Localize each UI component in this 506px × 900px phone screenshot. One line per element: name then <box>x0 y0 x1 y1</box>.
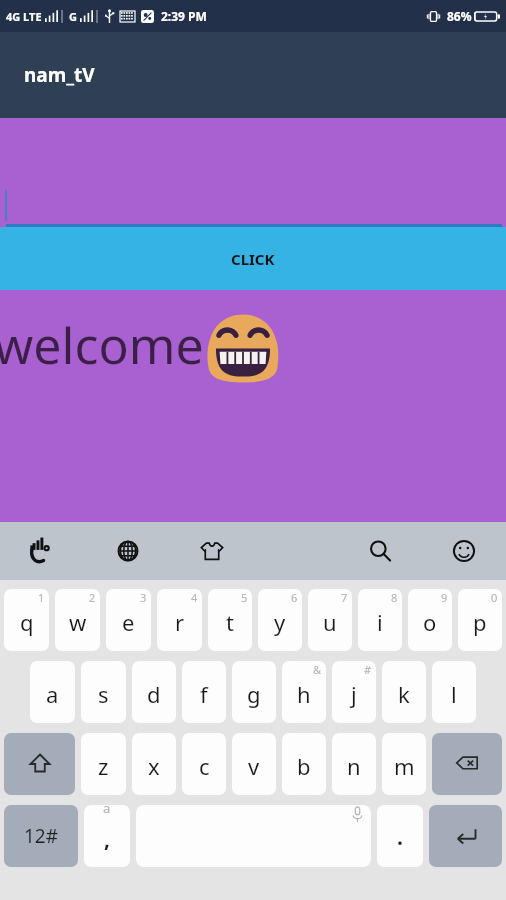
button[interactable]: m <box>382 733 426 795</box>
button[interactable]: Backspace <box>432 733 502 795</box>
staticText: x <box>148 751 160 781</box>
staticText: m <box>394 751 415 781</box>
staticText: a <box>103 805 111 817</box>
staticText: CLICK <box>231 249 275 269</box>
button[interactable]: o <box>408 589 452 651</box>
staticText: 3 <box>140 590 147 605</box>
button[interactable]: t <box>208 589 252 651</box>
staticText: & <box>313 662 322 677</box>
staticText: b <box>297 751 311 781</box>
button[interactable]: a <box>30 661 75 723</box>
button[interactable]: a <box>84 805 130 867</box>
button[interactable]: u <box>308 589 352 651</box>
staticText: 2:39 PM <box>161 8 207 24</box>
staticText: v <box>248 751 260 781</box>
button[interactable]: p <box>458 589 502 651</box>
staticText: 5 <box>241 590 248 605</box>
staticText: 2 <box>89 590 96 605</box>
staticText: welcome <box>0 311 204 379</box>
staticText: g <box>247 679 261 709</box>
button[interactable]: l <box>432 661 476 723</box>
staticText: a <box>46 679 59 709</box>
staticText: u <box>323 607 337 637</box>
button[interactable]: z <box>81 733 126 795</box>
button[interactable]: Space <box>136 805 371 867</box>
button[interactable]: Enter <box>429 805 502 867</box>
button[interactable]: i <box>358 589 402 651</box>
staticText: . <box>397 823 403 852</box>
button[interactable]: r <box>157 589 202 651</box>
button[interactable]: Language <box>85 522 170 580</box>
staticText: 0 <box>491 590 498 605</box>
button[interactable]: k <box>382 661 426 723</box>
button[interactable]: Themes <box>170 522 254 580</box>
staticText: o <box>423 607 437 637</box>
staticText: y <box>274 607 286 637</box>
staticText: 9 <box>441 590 448 605</box>
button[interactable]: f <box>182 661 226 723</box>
staticText: 4G LTE <box>6 9 42 24</box>
staticText: r <box>175 607 185 637</box>
button[interactable]: q <box>4 589 49 651</box>
button[interactable]: n <box>332 733 376 795</box>
button[interactable]: 12# <box>4 805 78 867</box>
button[interactable]: Handwriting <box>0 522 85 580</box>
staticText: G <box>69 9 77 24</box>
staticText: 7 <box>341 590 348 605</box>
staticText: 6 <box>291 590 298 605</box>
button[interactable]: h <box>282 661 326 723</box>
staticText: j <box>351 679 357 709</box>
button[interactable]: CLICK <box>0 227 506 290</box>
staticText: l <box>451 679 457 709</box>
staticText: 1 <box>38 590 45 605</box>
button[interactable]: s <box>81 661 126 723</box>
staticText: 12# <box>24 823 59 849</box>
button[interactable]: d <box>132 661 176 723</box>
staticText: , <box>104 825 110 854</box>
staticText: t <box>226 607 234 637</box>
staticText: q <box>20 607 34 637</box>
staticText: e <box>122 607 135 637</box>
button[interactable]: x <box>132 733 176 795</box>
staticText: c <box>199 751 210 781</box>
staticText: w <box>69 607 87 637</box>
staticText: 4 <box>191 590 198 605</box>
button[interactable]: g <box>232 661 276 723</box>
staticText: p <box>473 607 487 637</box>
staticText: nam_tV <box>24 62 95 88</box>
staticText: i <box>377 607 383 637</box>
button[interactable]: Shift <box>4 733 75 795</box>
button[interactable]: b <box>282 733 326 795</box>
staticText: # <box>364 662 372 677</box>
staticText: s <box>98 679 109 709</box>
staticText: h <box>297 679 311 709</box>
button[interactable]: e <box>106 589 151 651</box>
button[interactable]: c <box>182 733 226 795</box>
staticText: z <box>98 751 109 781</box>
staticText: f <box>200 679 208 709</box>
staticText: d <box>147 679 161 709</box>
button[interactable]: w <box>55 589 100 651</box>
staticText: n <box>347 751 361 781</box>
staticText: 8 <box>391 590 398 605</box>
button[interactable]: Search <box>338 522 422 580</box>
staticText: 86% <box>447 8 472 24</box>
button[interactable]: y <box>258 589 302 651</box>
button[interactable]: . <box>377 805 423 867</box>
button[interactable] <box>0 118 506 227</box>
button[interactable]: v <box>232 733 276 795</box>
staticText: k <box>398 679 410 709</box>
button[interactable]: j <box>332 661 376 723</box>
button[interactable]: Emoji <box>422 522 506 580</box>
